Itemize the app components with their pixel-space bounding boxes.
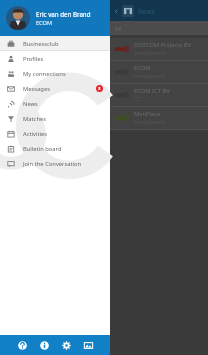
staticText: Profiles — [23, 55, 44, 63]
staticText: Businessclub — [23, 40, 59, 48]
staticText: My connections — [23, 70, 66, 78]
staticText: Messages — [23, 85, 50, 93]
staticText: ECOM — [134, 64, 204, 72]
button[interactable]: Profiles — [0, 51, 110, 66]
staticText: Activities — [23, 130, 48, 138]
staticText: MenPlaza — [134, 110, 204, 118]
button[interactable]: Gallery — [77, 335, 99, 355]
staticText: Matches — [23, 115, 47, 123]
staticText: Development — [134, 119, 166, 126]
staticText: ECOM — [36, 19, 52, 27]
staticText: All — [115, 25, 122, 32]
button[interactable]: News — [0, 96, 110, 111]
staticText: Eric van den Brand — [36, 10, 91, 18]
button[interactable]: Back — [110, 0, 208, 21]
button[interactable]: Settings — [55, 335, 77, 355]
staticText: DOTCOM Projects BV — [134, 41, 204, 49]
button[interactable]: MenPlaza — [110, 107, 208, 129]
other: Back — [113, 8, 120, 15]
staticText: Bulletin board — [23, 145, 62, 153]
staticText: News — [138, 7, 155, 16]
staticText: ICT — [134, 96, 142, 103]
button[interactable]: Eric van den Brand — [0, 0, 110, 36]
staticText: News — [23, 100, 38, 108]
staticText: Development — [134, 50, 166, 57]
staticText: Development — [134, 73, 166, 80]
button[interactable]: Bulletin board — [0, 141, 110, 156]
button[interactable]: Activities — [0, 126, 110, 141]
button[interactable]: ECOM ICT BV — [110, 84, 208, 106]
button[interactable]: Matches — [0, 111, 110, 126]
button[interactable]: Information — [33, 335, 55, 355]
button[interactable]: ECOM — [110, 61, 208, 83]
button[interactable]: Help — [11, 335, 33, 355]
staticText: Join the Conversation — [23, 160, 82, 168]
button[interactable]: DOTCOM Projects BV — [110, 38, 208, 60]
button[interactable]: My connections — [0, 66, 110, 81]
button[interactable]: Messages — [0, 81, 110, 96]
staticText: 3 — [98, 86, 101, 92]
button[interactable]: Join the Conversation — [0, 156, 110, 171]
button[interactable]: Businessclub — [0, 36, 110, 51]
staticText: ECOM ICT BV — [134, 87, 204, 95]
